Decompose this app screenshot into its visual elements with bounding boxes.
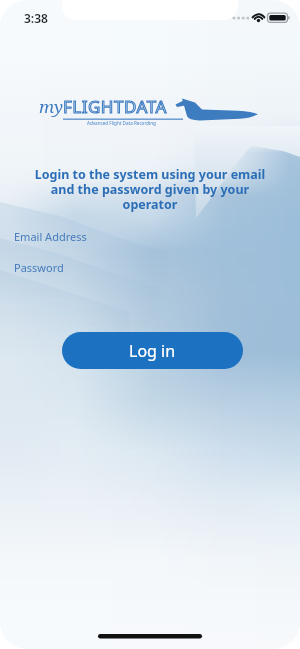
button[interactable]: Email Address (0, 224, 300, 248)
staticText: Email Address (14, 229, 87, 244)
staticText: 3:38 (24, 10, 48, 26)
button[interactable]: Log in (62, 332, 243, 369)
staticText: my (39, 95, 63, 118)
staticText: Password (14, 260, 64, 275)
staticText: FLIGHTDATA (63, 95, 167, 118)
staticText: Login to the system using your email and… (0, 166, 300, 213)
staticText: Advanced Flight Data Recording (87, 120, 156, 126)
staticText: Log in (129, 340, 176, 362)
button[interactable]: Password (0, 255, 300, 279)
